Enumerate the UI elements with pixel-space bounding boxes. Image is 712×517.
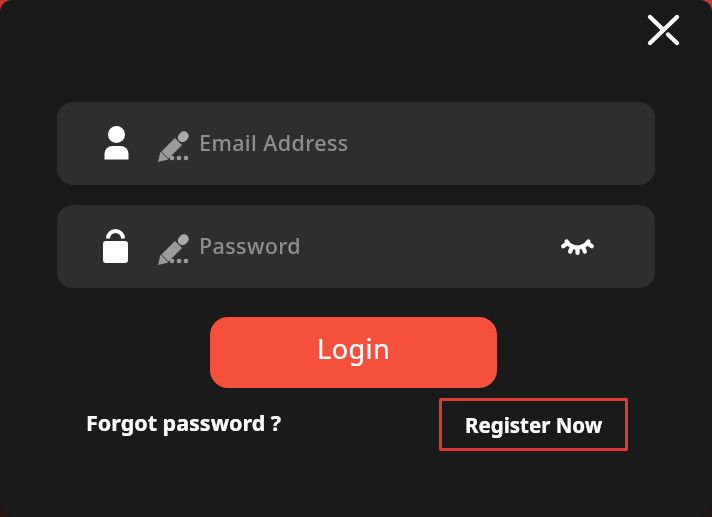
button[interactable]: Register Now	[439, 398, 628, 451]
button[interactable]	[646, 13, 682, 49]
staticText: Register Now	[465, 411, 603, 439]
staticText: Password	[199, 231, 301, 260]
button[interactable]: Password	[57, 205, 655, 288]
staticText: Email Address	[199, 128, 349, 157]
button[interactable]: Email Address	[57, 102, 655, 185]
button[interactable]: Login	[210, 317, 497, 388]
staticText: Forgot password ?	[86, 408, 282, 437]
staticText: Login	[317, 330, 391, 367]
button[interactable]: Forgot password ?	[86, 408, 282, 437]
